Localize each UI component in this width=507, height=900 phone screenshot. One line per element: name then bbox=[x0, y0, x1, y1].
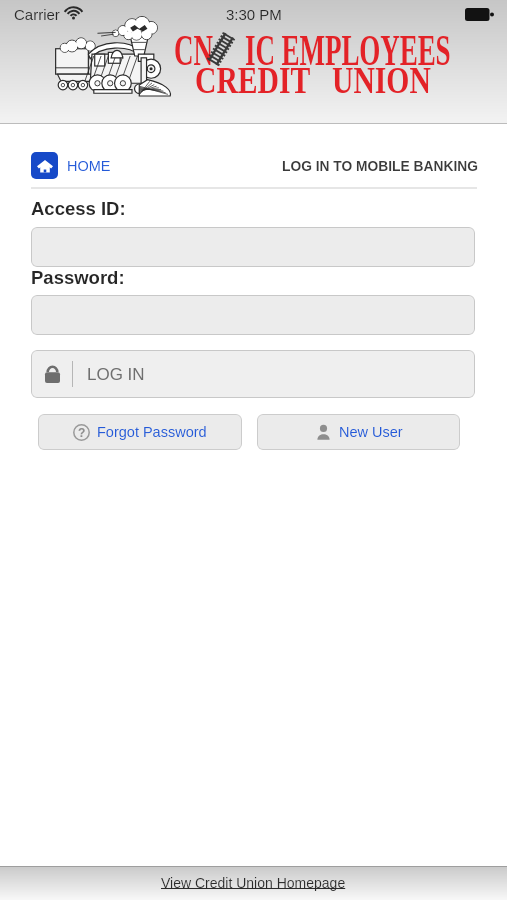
staticText: CREDIT UNION bbox=[195, 59, 431, 101]
button[interactable]: Text field bbox=[31, 295, 475, 335]
staticText: Forgot Password bbox=[97, 424, 207, 440]
button[interactable]: ? bbox=[38, 414, 242, 450]
staticText: Access ID: bbox=[31, 198, 126, 219]
staticText: New User bbox=[339, 424, 403, 440]
staticText: LOG IN bbox=[87, 365, 145, 384]
staticText: 3:30 PM bbox=[226, 6, 282, 23]
staticText: CN IC EMPLOYEES bbox=[174, 25, 451, 75]
button[interactable]: Text field bbox=[31, 227, 475, 267]
staticText: HOME bbox=[67, 158, 111, 174]
button[interactable]: View Credit Union Homepage bbox=[161, 875, 346, 891]
button[interactable]: HOME bbox=[31, 152, 111, 179]
staticText: Carrier bbox=[14, 6, 60, 23]
staticText: ? bbox=[78, 426, 86, 439]
button[interactable]: New User bbox=[257, 414, 460, 450]
staticText: LOG IN TO MOBILE BANKING bbox=[282, 159, 478, 174]
staticText: Password: bbox=[31, 267, 125, 288]
button[interactable]: LOG IN bbox=[31, 350, 475, 398]
